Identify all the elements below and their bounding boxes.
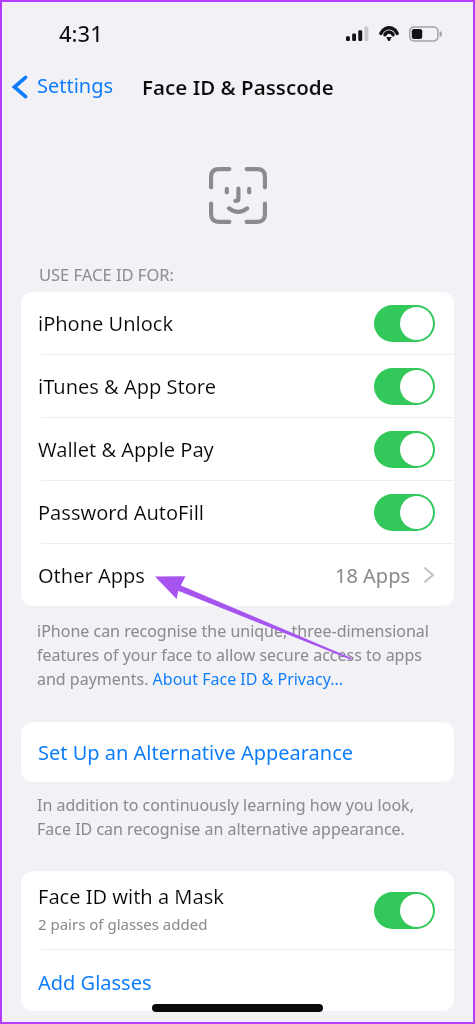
staticText: In addition to continuously learning how…	[37, 794, 442, 840]
button[interactable]: Toggle on	[374, 368, 435, 405]
button[interactable]: Toggle on	[374, 892, 435, 929]
button[interactable]: Toggle on	[374, 494, 435, 531]
button[interactable]: Face ID with a Mask	[21, 871, 454, 949]
staticText: Face ID & Passcode	[142, 73, 334, 101]
button[interactable]: Password AutoFill	[21, 481, 454, 543]
staticText: Password AutoFill	[38, 499, 204, 526]
button[interactable]: iPhone Unlock	[21, 292, 454, 354]
button[interactable]: Toggle on	[374, 305, 435, 342]
staticText: Add Glasses	[38, 969, 152, 996]
staticText: 4:31	[59, 18, 103, 48]
staticText: Set Up an Alternative Appearance	[38, 739, 354, 766]
staticText: Other Apps	[38, 562, 145, 589]
button[interactable]: iTunes & App Store	[21, 355, 454, 417]
button[interactable]: Back to Settings	[2, 67, 122, 104]
staticText: iTunes & App Store	[38, 373, 216, 400]
staticText: Settings	[37, 72, 114, 99]
staticText: USE FACE ID FOR:	[39, 263, 174, 285]
button[interactable]: Add Glasses	[21, 950, 454, 1011]
staticText: iPhone can recognise the unique, three-d…	[37, 620, 442, 690]
button[interactable]: Other Apps	[21, 544, 454, 606]
staticText: 2 pairs of glasses added	[38, 914, 208, 934]
staticText: 18 Apps	[335, 562, 411, 589]
staticText: Wallet & Apple Pay	[38, 436, 214, 463]
button[interactable]: Set Up an Alternative Appearance	[21, 722, 454, 782]
staticText: Face ID with a Mask	[38, 883, 224, 910]
staticText: iPhone Unlock	[38, 310, 174, 337]
button[interactable]: Toggle on	[374, 431, 435, 468]
button[interactable]: Wallet & Apple Pay	[21, 418, 454, 480]
